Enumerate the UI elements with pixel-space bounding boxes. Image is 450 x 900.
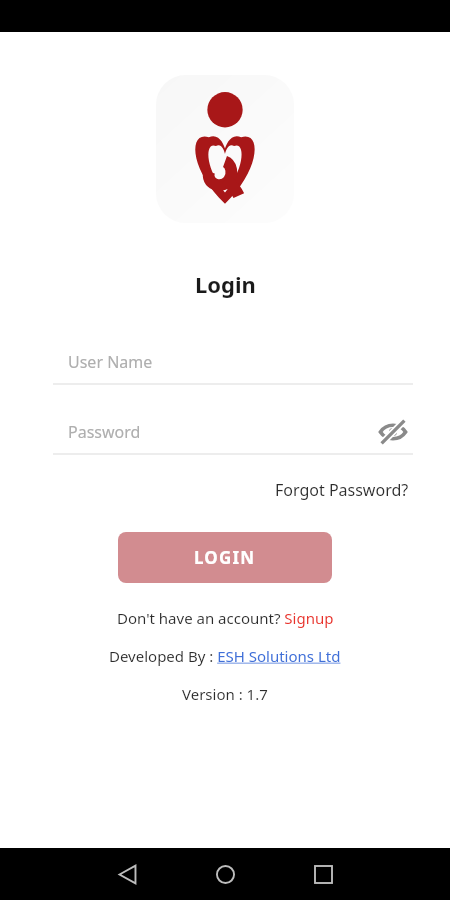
button[interactable]: Show password	[373, 412, 413, 452]
button[interactable]: Forgot Password?	[271, 475, 413, 505]
staticText: Login	[195, 269, 256, 299]
button[interactable]: LOGIN	[118, 532, 332, 583]
staticText: Don't have an account? Signup	[117, 608, 334, 628]
button[interactable]: User Name	[53, 341, 413, 383]
staticText: User Name	[68, 351, 153, 373]
staticText: Password	[68, 421, 141, 443]
button[interactable]: Don't have an account? Signup	[117, 608, 334, 628]
button[interactable]: App logo	[156, 75, 294, 223]
staticText: LOGIN	[194, 546, 256, 569]
staticText: Forgot Password?	[275, 479, 409, 501]
button[interactable]: Back	[99, 848, 155, 900]
button[interactable]: Recent apps	[295, 848, 351, 900]
button[interactable]: Home	[197, 848, 253, 900]
button[interactable]: Password	[53, 411, 413, 453]
staticText: Developed By : ESH Solutions Ltd	[109, 646, 341, 666]
button[interactable]: Developed By : ESH Solutions Ltd	[109, 646, 341, 666]
staticText: Version : 1.7	[182, 684, 268, 704]
